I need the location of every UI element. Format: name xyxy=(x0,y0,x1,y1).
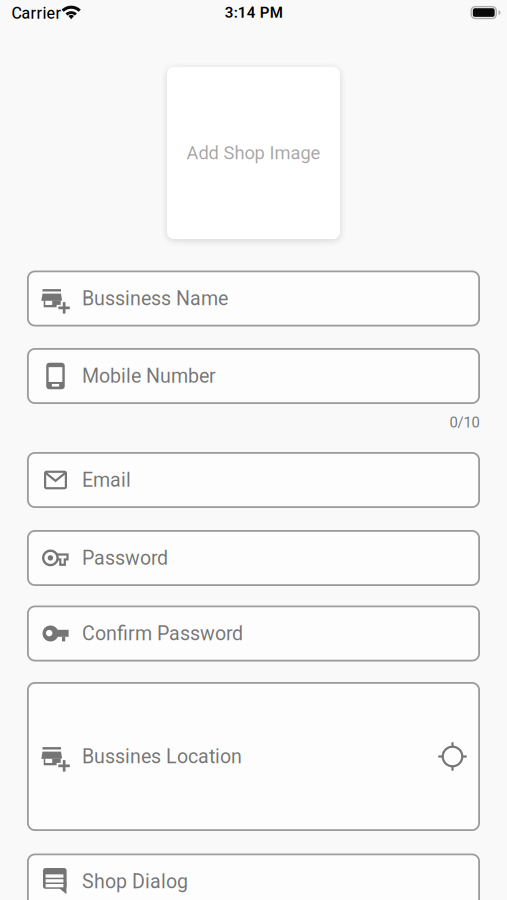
staticText: Email xyxy=(82,468,131,491)
button[interactable]: Confirm Password xyxy=(27,605,480,661)
staticText: 0/10 xyxy=(449,414,479,431)
staticText: Bussiness Name xyxy=(82,287,228,310)
staticText: Shop Dialog xyxy=(82,870,188,893)
staticText: Password xyxy=(82,546,168,569)
button[interactable]: Add Shop Image xyxy=(167,67,340,239)
button[interactable]: Password xyxy=(27,530,480,586)
staticText: Bussines Location xyxy=(82,745,242,768)
button[interactable]: Email xyxy=(27,452,480,508)
staticText: Confirm Password xyxy=(82,622,243,645)
button[interactable]: Shop Dialog xyxy=(27,853,480,900)
staticText: Mobile Number xyxy=(82,364,216,387)
staticText: Add Shop Image xyxy=(186,142,320,164)
staticText: Carrier xyxy=(11,4,61,23)
button[interactable] xyxy=(438,742,467,771)
button[interactable]: Bussiness Name xyxy=(27,270,480,326)
staticText: 3:14 PM xyxy=(225,4,283,21)
button[interactable]: Bussines Location xyxy=(27,682,480,831)
button[interactable]: Mobile Number xyxy=(27,348,480,404)
